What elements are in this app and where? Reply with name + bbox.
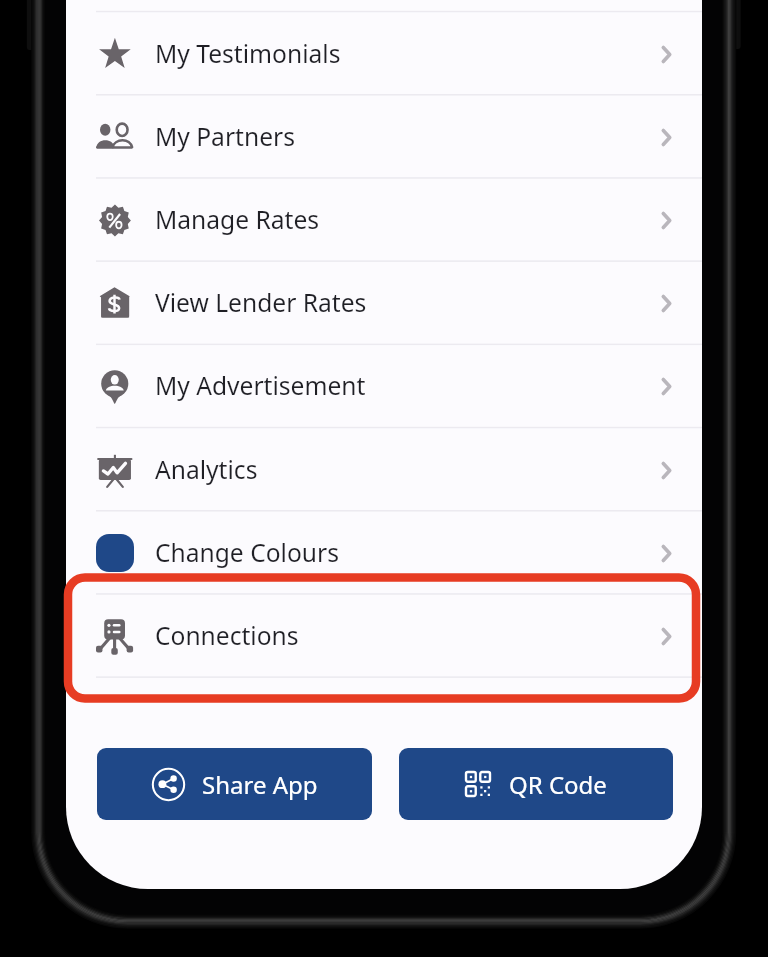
button[interactable]: Change Colours — [66, 511, 702, 594]
button[interactable]: Analytics — [66, 428, 702, 511]
staticText: Manage Rates — [155, 203, 320, 237]
button[interactable]: QR Code — [399, 748, 673, 820]
staticText: Share App — [202, 768, 318, 801]
staticText: My Partners — [155, 120, 295, 154]
staticText: Change Colours — [155, 536, 339, 570]
staticText: My Advertisement — [155, 369, 366, 403]
button[interactable]: My Advertisement — [66, 344, 702, 427]
staticText: Connections — [155, 619, 299, 653]
staticText: View Lender Rates — [155, 286, 367, 320]
button[interactable]: View Lender Rates — [66, 261, 702, 344]
button[interactable]: Manage Rates — [66, 178, 702, 261]
staticText: Analytics — [155, 453, 258, 487]
button[interactable]: Share App — [97, 748, 372, 820]
staticText: My Testimonials — [155, 37, 341, 71]
button[interactable]: Connections — [66, 594, 702, 677]
button[interactable]: My Partners — [66, 95, 702, 178]
staticText: QR Code — [509, 768, 607, 801]
button[interactable]: My Testimonials — [66, 12, 702, 95]
